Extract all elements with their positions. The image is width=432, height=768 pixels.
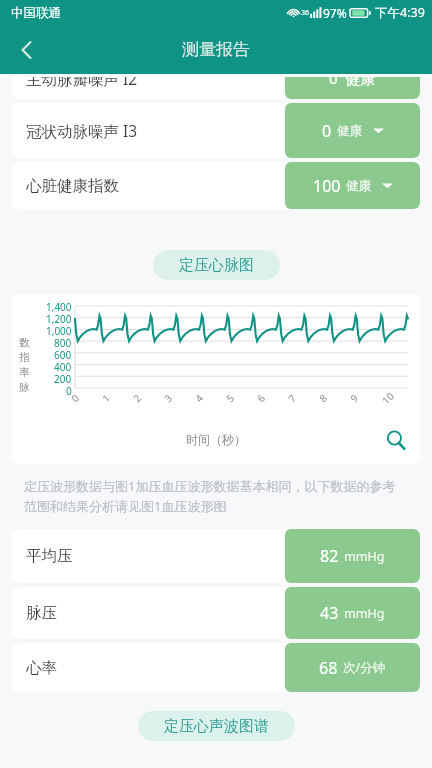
- staticText: 定压心脉图: [179, 256, 254, 275]
- staticText: 400: [54, 360, 72, 372]
- staticText: 200: [54, 372, 72, 384]
- staticText: 10: [379, 389, 397, 407]
- staticText: 0: [66, 384, 72, 396]
- staticText: 冠状动脉噪声 I3: [26, 120, 138, 141]
- staticText: 6: [254, 391, 268, 405]
- staticText: 心脏健康指数: [26, 176, 119, 196]
- button[interactable]: 定压心脉图: [153, 250, 280, 280]
- button[interactable]: Back: [6, 29, 48, 71]
- staticText: 数: [19, 336, 30, 349]
- button[interactable]: 定压心声波图谱: [138, 711, 295, 741]
- staticText: 4: [192, 391, 206, 405]
- staticText: 1: [99, 391, 113, 405]
- staticText: 8: [316, 391, 330, 405]
- staticText: 定压波形数据与图1加压血压波形数据基本相同，以下数据的参考范围和结果分析请见图1…: [24, 477, 408, 515]
- staticText: 时间（秒）: [186, 432, 246, 447]
- staticText: 1,400: [46, 300, 72, 312]
- staticText: 97%: [323, 5, 347, 21]
- staticText: mmHg: [344, 605, 385, 622]
- staticText: 1,000: [46, 324, 72, 336]
- staticText: 0: [68, 391, 82, 405]
- staticText: 下午4:39: [375, 4, 425, 21]
- staticText: 中国联通: [11, 5, 61, 21]
- staticText: 主动脉瓣噪声 I2: [26, 77, 138, 89]
- staticText: 43: [320, 602, 339, 624]
- button[interactable]: 心脏健康指数: [12, 162, 420, 209]
- staticText: 68: [319, 657, 338, 679]
- staticText: mmHg: [344, 548, 385, 565]
- staticText: 次/分钟: [343, 659, 386, 676]
- button[interactable]: 主动脉瓣噪声 I2: [12, 77, 420, 99]
- staticText: 600: [54, 348, 72, 360]
- staticText: 5: [223, 391, 237, 405]
- staticText: 3: [161, 391, 175, 405]
- staticText: 1,200: [46, 312, 72, 324]
- button[interactable]: 脉压: [12, 587, 420, 639]
- button[interactable]: 冠状动脉噪声 I3: [12, 103, 420, 158]
- staticText: 平均压: [26, 546, 73, 566]
- button[interactable]: Zoom chart: [382, 426, 410, 454]
- staticText: 健康: [346, 178, 371, 194]
- staticText: 800: [54, 336, 72, 348]
- staticText: 82: [320, 545, 339, 567]
- staticText: 健康: [337, 123, 362, 139]
- staticText: 9: [347, 391, 361, 405]
- staticText: 指: [19, 351, 30, 364]
- staticText: 脉: [19, 381, 30, 394]
- staticText: 7: [285, 391, 299, 405]
- staticText: 定压心声波图谱: [164, 717, 269, 736]
- staticText: 36: [301, 8, 310, 18]
- staticText: 心率: [26, 658, 57, 678]
- staticText: 率: [19, 366, 30, 379]
- staticText: 0 健康: [329, 77, 376, 88]
- staticText: 脉压: [26, 603, 57, 623]
- button[interactable]: 平均压: [12, 529, 420, 583]
- staticText: 测量报告: [182, 39, 250, 60]
- button[interactable]: 心率: [12, 643, 420, 692]
- staticText: 100: [313, 175, 341, 197]
- staticText: 0: [322, 120, 332, 142]
- staticText: 2: [130, 391, 144, 405]
